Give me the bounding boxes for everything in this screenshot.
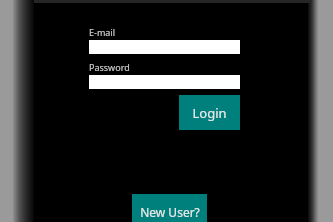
staticText: New User? (140, 204, 200, 220)
button[interactable]: Login (179, 95, 240, 130)
staticText: Login (192, 104, 227, 122)
button[interactable]: New User? (132, 194, 207, 222)
staticText: E-mail (89, 26, 116, 38)
staticText: Password (89, 61, 130, 73)
